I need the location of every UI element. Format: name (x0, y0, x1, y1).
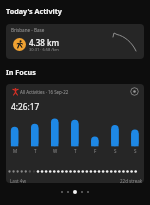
staticText: W (53, 148, 58, 154)
button[interactable]: All Activities · 16 Sep-22 (6, 84, 144, 183)
button[interactable]: Options (130, 87, 139, 96)
staticText: All Activities · 16 Sep-22 (20, 89, 69, 95)
staticText: T (74, 148, 77, 154)
staticText: S (134, 148, 137, 154)
staticText: M (13, 148, 18, 154)
staticText: Brisbane - Base (11, 27, 45, 33)
staticText: 22d streak (120, 178, 143, 183)
staticText: S (114, 148, 117, 154)
staticText: 4.38 km (29, 37, 60, 48)
staticText: Today's Activity (6, 6, 62, 16)
staticText: F (94, 148, 97, 154)
button[interactable]: Brisbane - Base (6, 24, 144, 59)
staticText: In Focus (6, 67, 36, 77)
staticText: 30:31 · 6:58 /km (29, 47, 59, 52)
staticText: 4:26:17 (11, 101, 40, 112)
staticText: Last 4w (10, 178, 26, 183)
staticText: T (34, 148, 37, 154)
